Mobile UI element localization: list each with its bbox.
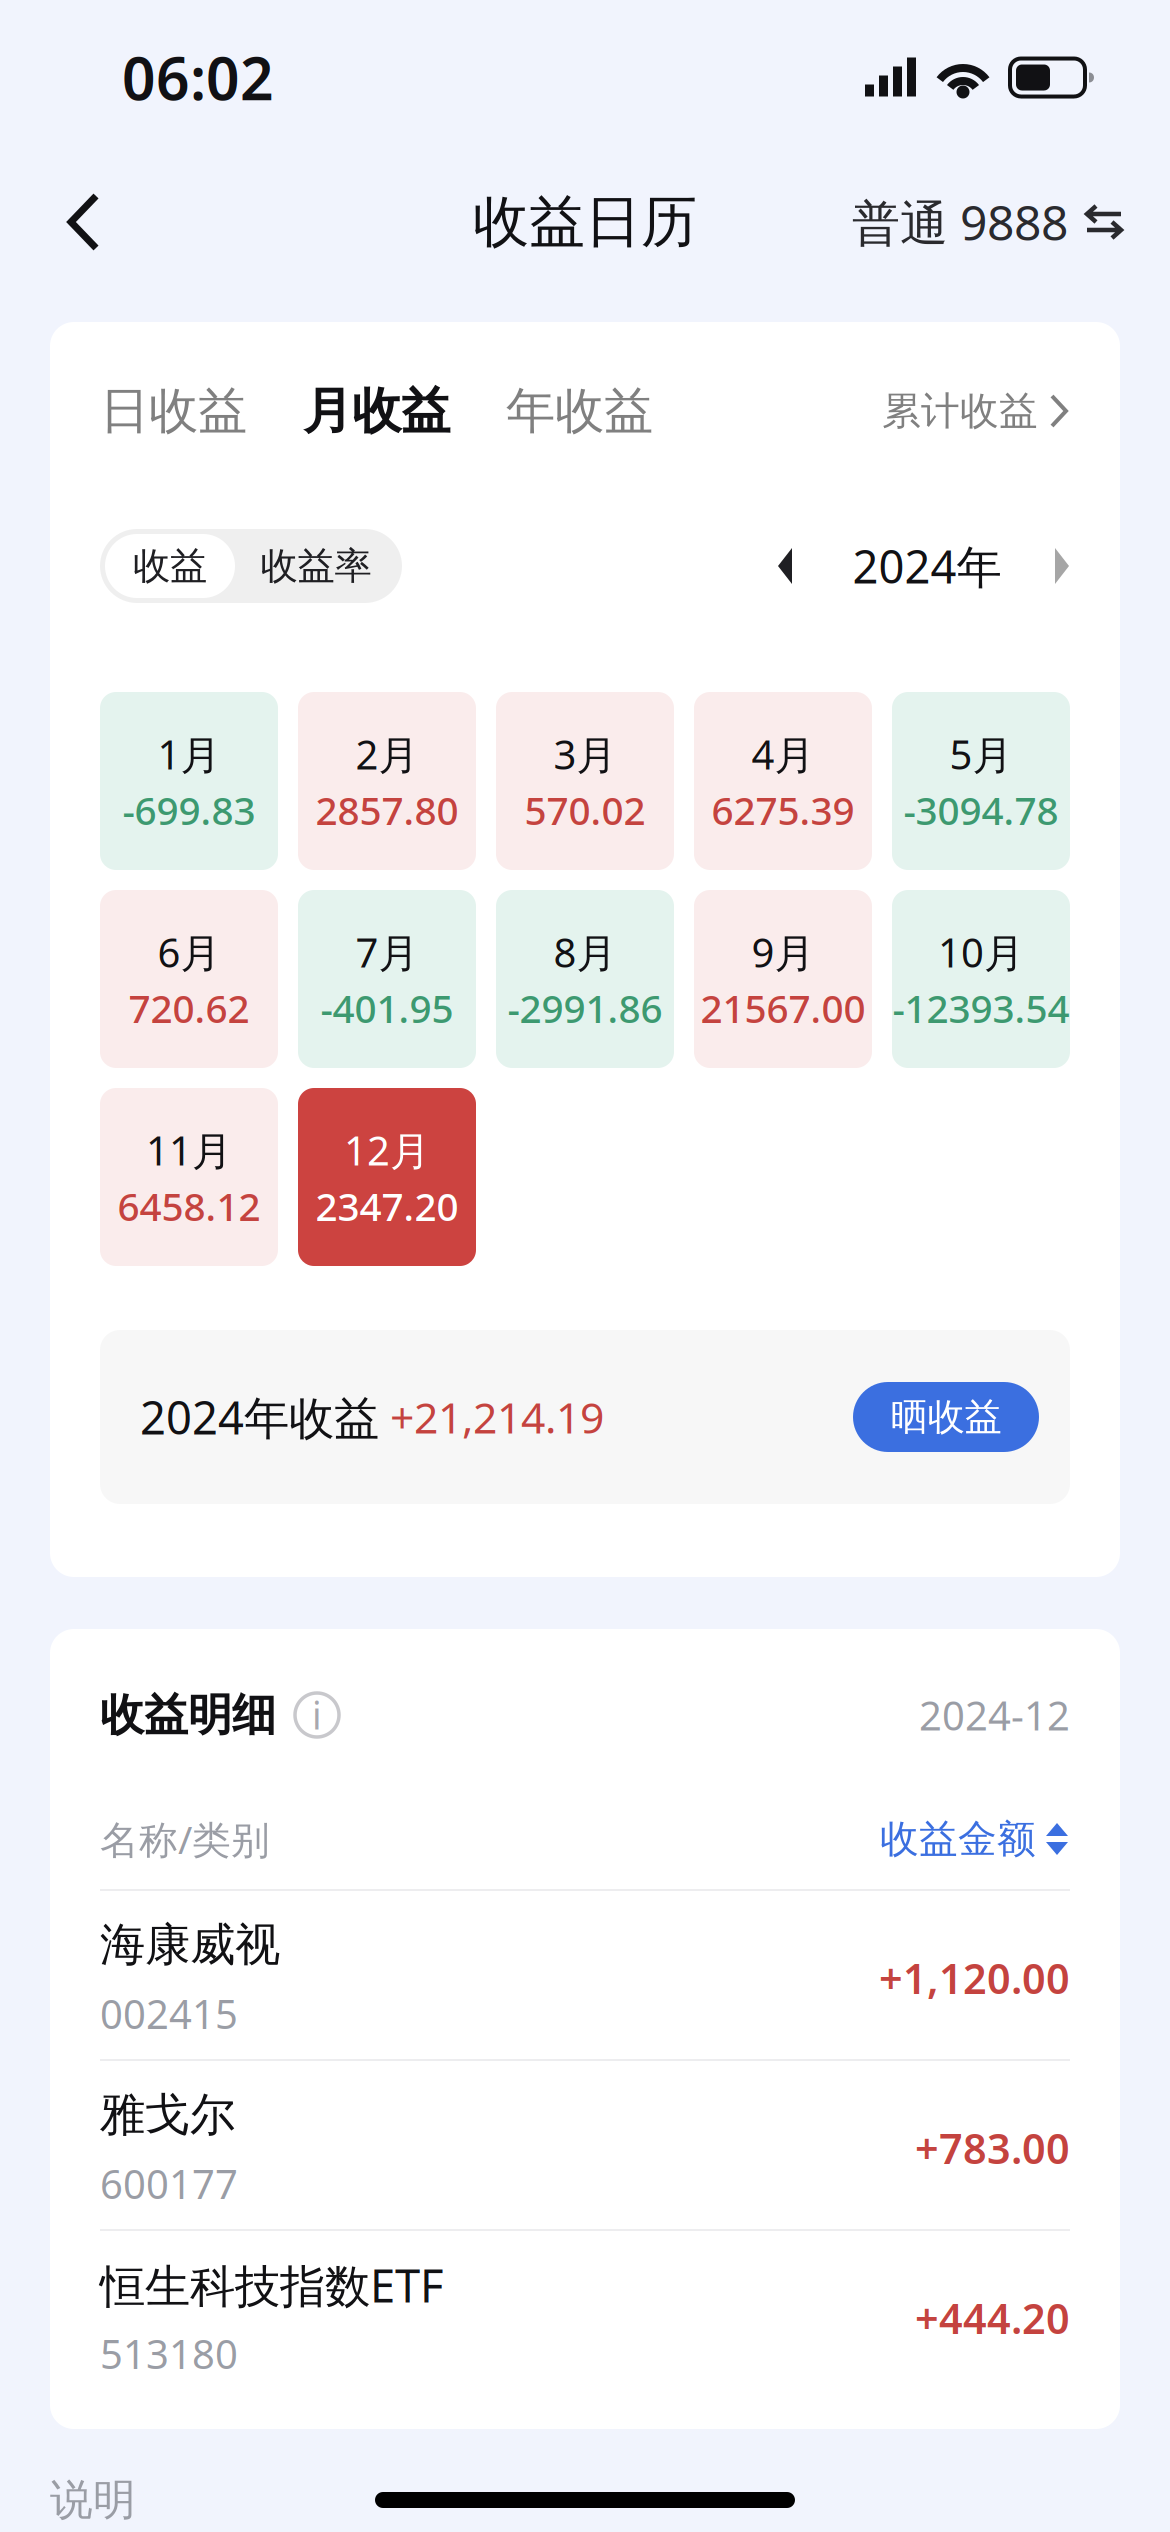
- staticText: 收益金额: [880, 1815, 1036, 1863]
- button[interactable]: Back: [28, 167, 138, 277]
- staticText: 12月: [344, 1123, 430, 1176]
- button[interactable]: 收益金额: [880, 1815, 1070, 1863]
- staticText: +21,214.19: [379, 1389, 604, 1445]
- button[interactable]: Info: [276, 1692, 340, 1738]
- button[interactable]: 累计收益: [882, 387, 1070, 435]
- button[interactable]: 4月: [694, 692, 872, 870]
- button[interactable]: 收益: [105, 534, 235, 598]
- staticText: 513180: [100, 2327, 238, 2380]
- button[interactable]: 收益率: [235, 534, 397, 598]
- staticText: 2024年: [852, 536, 1001, 596]
- staticText: 6275.39: [711, 784, 854, 836]
- staticText: 普通 9888: [852, 190, 1068, 254]
- staticText: 2024年收益: [140, 1387, 379, 1447]
- staticText: 恒生科技指数ETF: [100, 2255, 444, 2315]
- staticText: 2月: [355, 727, 418, 780]
- staticText: -2991.86: [507, 982, 662, 1034]
- staticText: 收益日历: [473, 188, 697, 256]
- staticText: -401.95: [320, 982, 453, 1034]
- staticText: 4月: [751, 727, 814, 780]
- button[interactable]: 海康威视: [100, 1891, 1070, 2059]
- staticText: 雅戈尔: [100, 2087, 235, 2143]
- button[interactable]: 11月: [100, 1088, 278, 1266]
- staticText: 600177: [100, 2157, 238, 2210]
- staticText: +1,120.00: [879, 1951, 1070, 2005]
- staticText: -3094.78: [903, 784, 1058, 836]
- staticText: 2347.20: [315, 1180, 458, 1232]
- button[interactable]: 雅戈尔: [100, 2061, 1070, 2229]
- staticText: 570.02: [524, 784, 645, 836]
- button[interactable]: Previous year: [777, 529, 821, 603]
- staticText: 2024-12: [919, 1688, 1070, 1741]
- staticText: 6458.12: [117, 1180, 260, 1232]
- staticText: -699.83: [122, 784, 255, 836]
- staticText: +444.20: [915, 2291, 1070, 2345]
- staticText: 8月: [553, 925, 616, 978]
- staticText: 002415: [100, 1987, 238, 2040]
- button[interactable]: 恒生科技指数ETF: [100, 2231, 1070, 2399]
- button[interactable]: 10月: [892, 890, 1070, 1068]
- button[interactable]: 年收益: [506, 381, 653, 441]
- button[interactable]: 日收益: [100, 381, 247, 441]
- staticText: 6月: [157, 925, 220, 978]
- button[interactable]: 2月: [298, 692, 476, 870]
- button[interactable]: 晒收益: [853, 1382, 1039, 1452]
- staticText: 说明: [50, 2474, 136, 2526]
- button[interactable]: 7月: [298, 890, 476, 1068]
- staticText: 9月: [751, 925, 814, 978]
- staticText: 名称/类别: [100, 1813, 270, 1865]
- staticText: 收益率: [260, 543, 371, 589]
- staticText: 收益: [133, 543, 207, 589]
- button[interactable]: 月收益: [247, 381, 506, 441]
- button[interactable]: 说明: [50, 2474, 136, 2526]
- staticText: 收益明细: [100, 1688, 276, 1742]
- staticText: 2857.80: [315, 784, 458, 836]
- staticText: +783.00: [915, 2121, 1070, 2175]
- staticText: 11月: [146, 1123, 232, 1176]
- staticText: 月收益: [303, 381, 450, 441]
- staticText: 3月: [553, 727, 616, 780]
- button[interactable]: 9月: [694, 890, 872, 1068]
- staticText: 5月: [949, 727, 1012, 780]
- button[interactable]: 3月: [496, 692, 674, 870]
- staticText: 720.62: [128, 982, 249, 1034]
- button[interactable]: 1月: [100, 692, 278, 870]
- button[interactable]: 5月: [892, 692, 1070, 870]
- staticText: 累计收益: [882, 387, 1038, 435]
- staticText: 海康威视: [100, 1917, 280, 1973]
- staticText: 7月: [355, 925, 418, 978]
- button[interactable]: Next year: [1033, 529, 1070, 603]
- button[interactable]: 12月: [298, 1088, 476, 1266]
- staticText: 21567.00: [700, 982, 865, 1034]
- staticText: 晒收益: [890, 1394, 1001, 1440]
- staticText: -12393.54: [892, 982, 1069, 1034]
- button[interactable]: 6月: [100, 890, 278, 1068]
- button[interactable]: 普通 9888: [852, 170, 1124, 274]
- staticText: 年收益: [506, 381, 653, 441]
- staticText: 日收益: [100, 381, 247, 441]
- staticText: 10月: [938, 925, 1024, 978]
- staticText: 1月: [157, 727, 220, 780]
- staticText: i: [312, 1690, 322, 1740]
- button[interactable]: 8月: [496, 890, 674, 1068]
- staticText: 06:02: [122, 38, 274, 116]
